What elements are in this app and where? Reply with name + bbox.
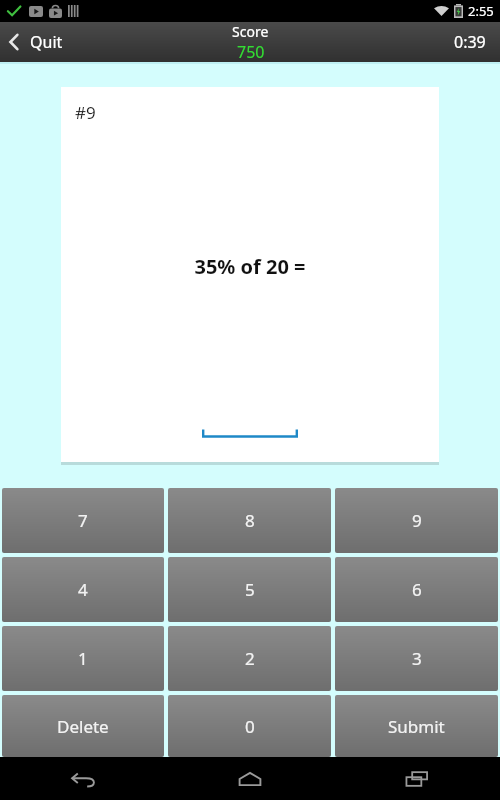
button[interactable]: Delete (2, 695, 164, 757)
staticText: 4 (78, 578, 88, 601)
button[interactable]: 0 (168, 695, 331, 757)
button[interactable]: 9 (335, 488, 498, 553)
staticText: 2 (245, 647, 255, 670)
staticText: Quit (30, 31, 63, 53)
button[interactable]: 8 (168, 488, 331, 553)
staticText: 35% of 20 = (61, 253, 439, 280)
button[interactable]: Submit (335, 695, 498, 757)
staticText: 0:39 (454, 31, 486, 53)
button[interactable]: Recent apps (333, 757, 500, 800)
staticText: Delete (57, 715, 109, 738)
button[interactable]: 4 (2, 557, 164, 622)
button[interactable]: Home (166, 757, 333, 800)
staticText: 9 (412, 509, 422, 532)
button[interactable]: 1 (2, 626, 164, 691)
button[interactable]: 5 (168, 557, 331, 622)
staticText: 8 (245, 509, 255, 532)
staticText: 1 (78, 647, 88, 670)
button[interactable]: 7 (2, 488, 164, 553)
staticText: 6 (412, 578, 422, 601)
staticText: Score (232, 22, 269, 41)
button[interactable]: Quit (0, 22, 77, 62)
staticText: 3 (412, 647, 422, 670)
button[interactable]: 2 (168, 626, 331, 691)
staticText: 7 (78, 509, 88, 532)
button[interactable]: 3 (335, 626, 498, 691)
staticText: 0 (245, 715, 255, 738)
button[interactable]: 6 (335, 557, 498, 622)
staticText: Submit (388, 715, 445, 738)
staticText: 750 (237, 41, 265, 62)
button[interactable]: Back (0, 757, 166, 800)
staticText: #9 (75, 101, 96, 124)
staticText: 5 (245, 578, 255, 601)
staticText: 2:55 (468, 2, 494, 20)
